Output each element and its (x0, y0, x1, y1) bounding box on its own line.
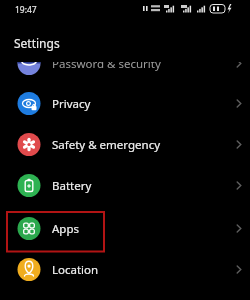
staticText: 19:47 (15, 4, 37, 16)
staticText: Safety & emergency (52, 137, 161, 153)
staticText: Apps (52, 221, 80, 237)
staticText: Password & security (52, 56, 161, 72)
staticText: Privacy (52, 96, 91, 112)
button[interactable]: Privacy (0, 83, 250, 124)
button[interactable]: Safety & emergency (0, 124, 250, 165)
staticText: Settings (14, 35, 60, 51)
staticText: Battery (52, 178, 92, 194)
button[interactable]: Battery (0, 165, 250, 206)
button[interactable]: Apps (0, 208, 250, 249)
staticText: Location (52, 262, 99, 278)
button[interactable]: Location (0, 249, 250, 290)
button[interactable]: Password & security (0, 43, 250, 84)
